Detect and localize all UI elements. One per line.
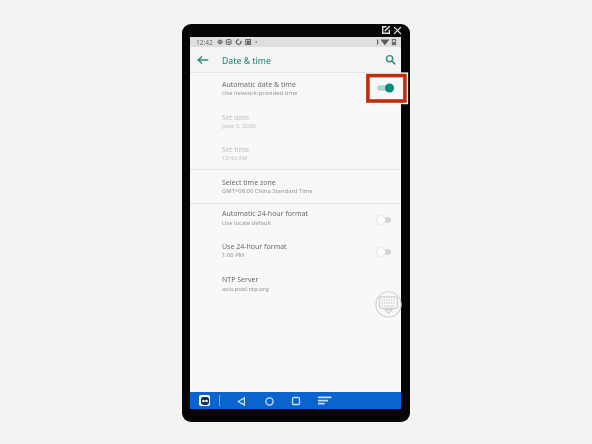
button[interactable]: Automatic date & time xyxy=(190,72,401,105)
staticText: Set date xyxy=(222,113,249,123)
staticText: NTP Server xyxy=(222,275,259,285)
button[interactable]: Home xyxy=(262,394,276,408)
button[interactable]: Switch input method xyxy=(199,395,210,406)
button[interactable]: Toggle xyxy=(377,213,397,227)
staticText: Use locale default xyxy=(222,219,272,227)
button[interactable]: Set date xyxy=(190,105,401,138)
button[interactable]: Toggle xyxy=(377,81,397,95)
button[interactable]: Back xyxy=(191,48,213,71)
button[interactable]: Menu xyxy=(315,392,333,409)
staticText: Date & time xyxy=(222,55,271,67)
staticText: Set time xyxy=(222,145,249,155)
button[interactable]: Back xyxy=(234,394,248,408)
button[interactable]: Search xyxy=(380,48,401,71)
staticText: asia.pool.ntp.org xyxy=(222,285,269,293)
button[interactable]: Set time xyxy=(190,137,401,169)
staticText: 1:00 PM xyxy=(222,251,245,259)
staticText: 12:42 xyxy=(196,38,213,47)
button[interactable]: Close xyxy=(390,24,404,36)
button[interactable]: Hide keyboard xyxy=(375,291,402,318)
button[interactable]: Automatic 24-hour format xyxy=(190,204,401,237)
staticText: June 3, 2020 xyxy=(222,122,256,130)
button[interactable]: Toggle xyxy=(377,245,397,259)
staticText: Select time zone xyxy=(222,178,276,188)
staticText: GMT+08:00 China Standard Time xyxy=(222,187,313,195)
button[interactable]: NTP Server xyxy=(190,269,401,302)
button[interactable]: Open in new window xyxy=(378,24,394,36)
button[interactable]: Select time zone xyxy=(190,170,401,203)
staticText: Automatic 24-hour format xyxy=(222,209,308,219)
staticText: 12:42 AM xyxy=(222,154,248,162)
staticText: Automatic date & time xyxy=(222,80,296,90)
button[interactable]: Use 24-hour format xyxy=(190,236,401,269)
staticText: Use network-provided time xyxy=(222,89,298,97)
button[interactable]: Recent apps xyxy=(289,394,303,408)
staticText: Use 24-hour format xyxy=(222,242,287,252)
